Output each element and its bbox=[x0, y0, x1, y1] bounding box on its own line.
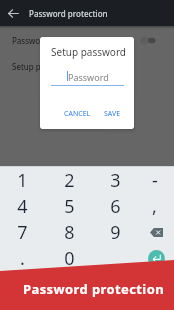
button[interactable]: - bbox=[135, 167, 174, 193]
staticText: . bbox=[20, 246, 25, 271]
staticText: Password protection bbox=[23, 280, 165, 298]
other: Backspace bbox=[150, 228, 163, 237]
other: Enter bbox=[148, 250, 165, 267]
button[interactable]: 8 bbox=[44, 219, 95, 245]
staticText: Setup password bbox=[51, 45, 126, 59]
button[interactable]: 2 bbox=[44, 167, 95, 193]
button[interactable]: Enter bbox=[135, 245, 174, 271]
button[interactable]: 5 bbox=[44, 193, 95, 219]
button[interactable]: 1 bbox=[0, 167, 44, 193]
staticText: CANCEL bbox=[64, 109, 91, 119]
staticText: Password bbox=[68, 71, 109, 83]
button[interactable]: Setup password bbox=[0, 53, 174, 79]
button[interactable]: 6 bbox=[95, 193, 135, 219]
button[interactable]: 7 bbox=[0, 219, 44, 245]
staticText: Password protection bbox=[29, 8, 108, 19]
button[interactable]: Back bbox=[0, 0, 26, 26]
button[interactable]: SAVE bbox=[102, 105, 123, 123]
staticText: 9 bbox=[110, 220, 121, 245]
staticText: 2 bbox=[64, 168, 75, 193]
staticText: 3 bbox=[110, 168, 121, 193]
staticText: 6 bbox=[110, 194, 121, 219]
button[interactable]: 9 bbox=[95, 219, 135, 245]
staticText: 7 bbox=[17, 220, 28, 245]
staticText: Password protection bbox=[12, 35, 140, 46]
button[interactable]: 3 bbox=[95, 167, 135, 193]
button[interactable]: CANCEL bbox=[62, 105, 93, 123]
staticText: - bbox=[152, 168, 158, 193]
button[interactable]: , bbox=[135, 193, 174, 219]
button[interactable]: 4 bbox=[0, 193, 44, 219]
other: Toggle bbox=[140, 36, 156, 45]
staticText: , bbox=[152, 194, 157, 219]
staticText: 1 bbox=[17, 168, 28, 193]
staticText: 4 bbox=[17, 194, 28, 219]
staticText: SAVE bbox=[104, 109, 121, 119]
button[interactable]: 0 bbox=[44, 245, 95, 271]
button[interactable]: Backspace bbox=[135, 219, 174, 245]
staticText: 8 bbox=[64, 220, 75, 245]
staticText: Setup password bbox=[12, 61, 174, 72]
staticText: 5 bbox=[64, 194, 75, 219]
staticText: 0 bbox=[64, 246, 75, 271]
button[interactable] bbox=[95, 245, 135, 271]
button[interactable]: . bbox=[0, 245, 44, 271]
button[interactable]: Password protection bbox=[0, 27, 174, 53]
